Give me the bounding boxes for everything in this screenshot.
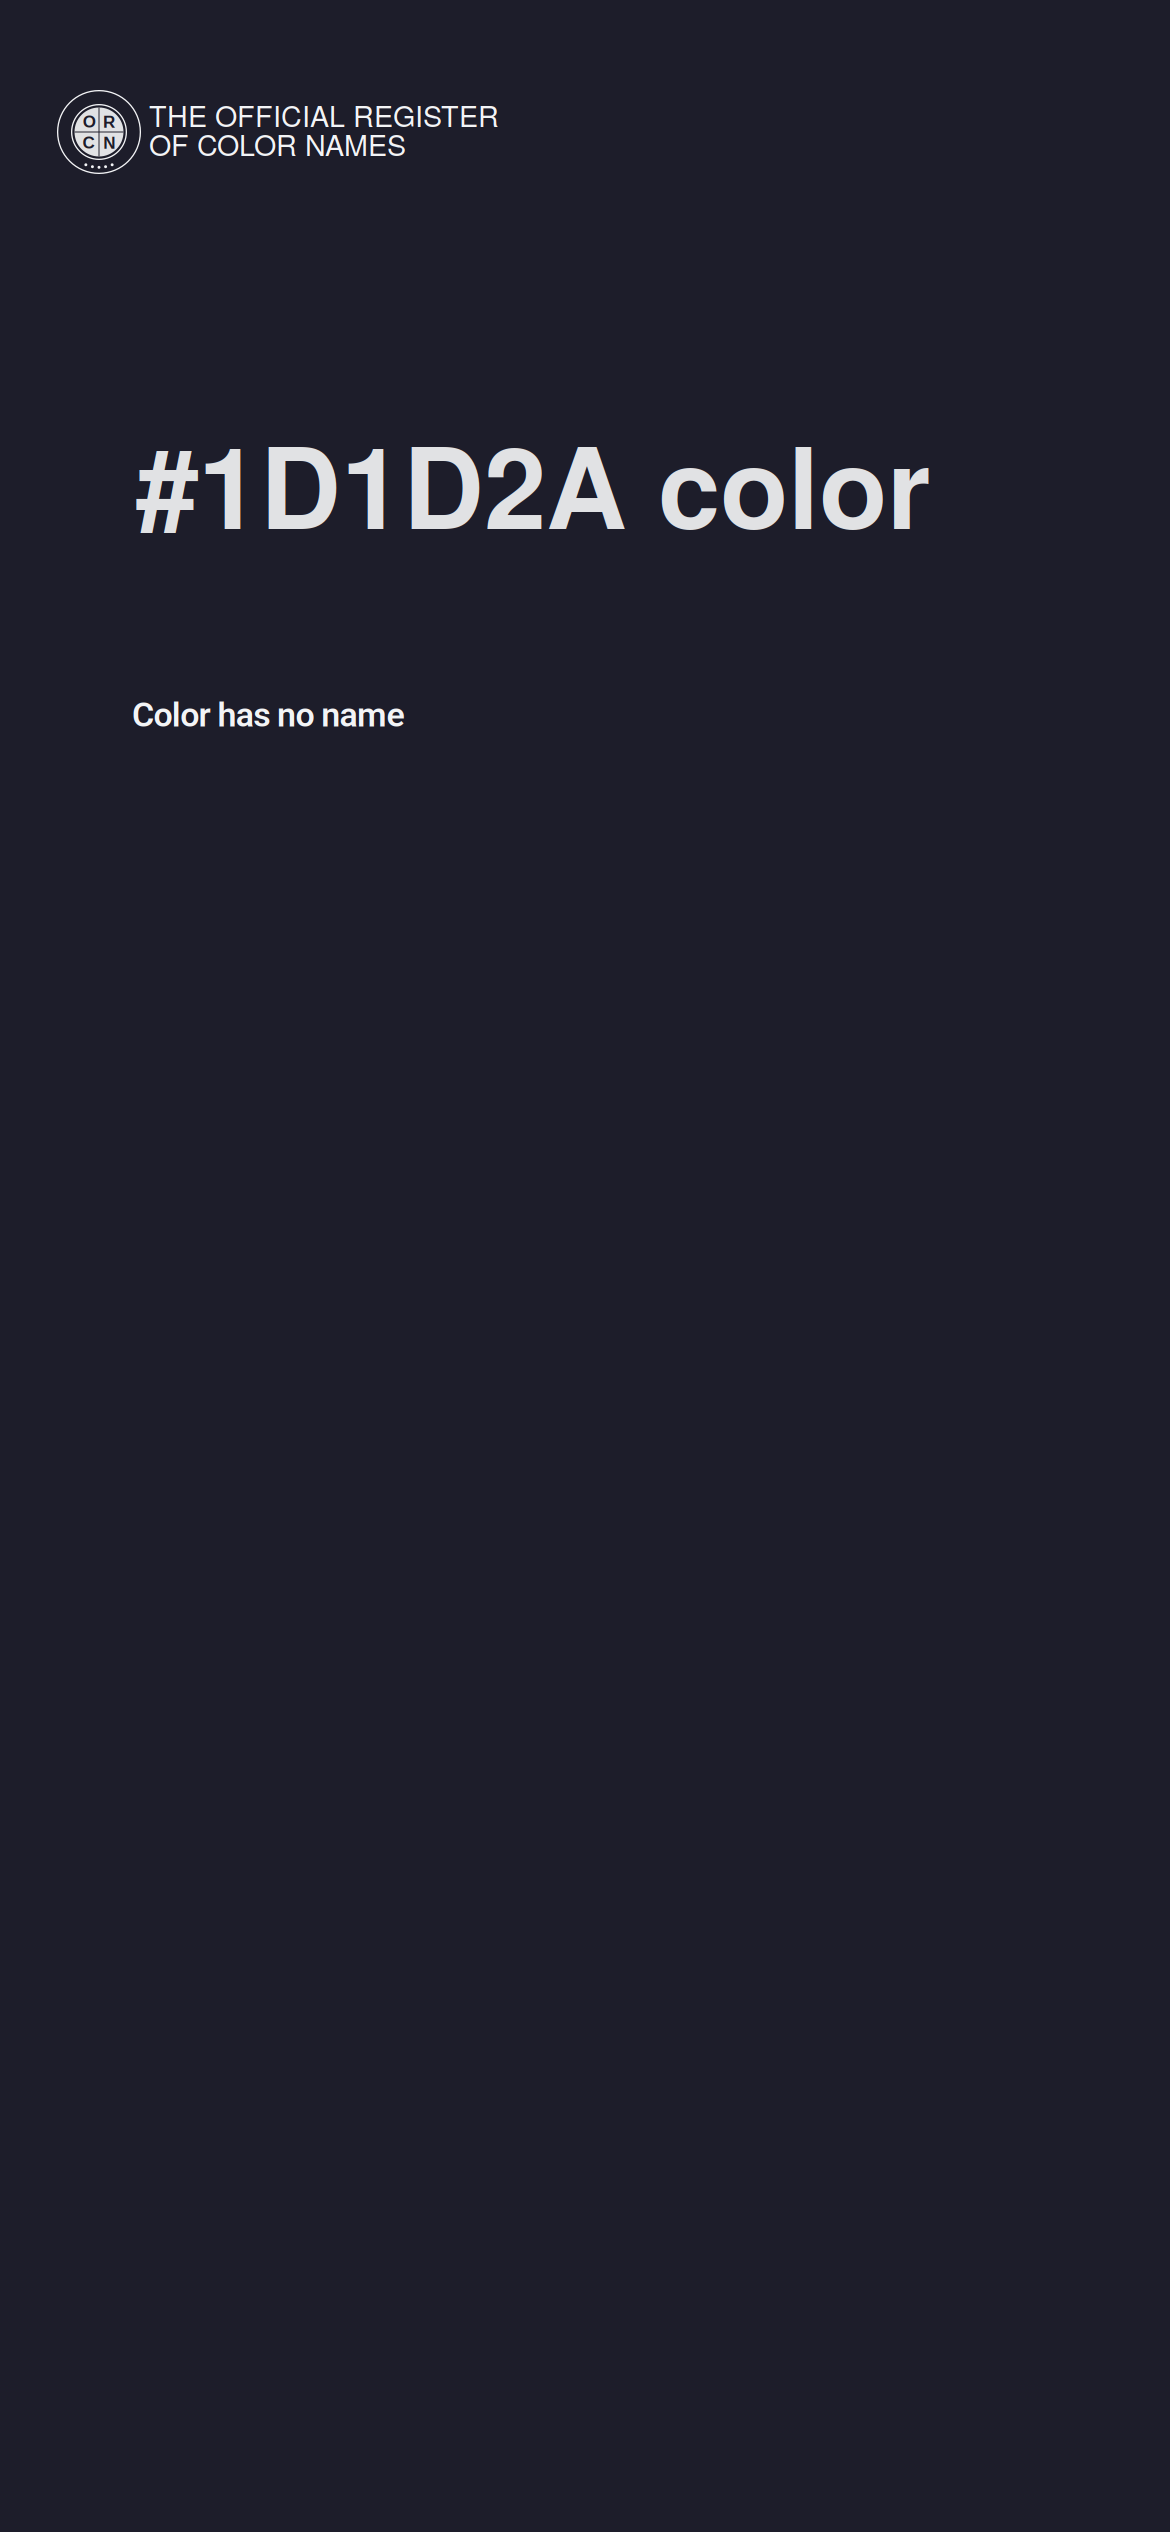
staticText: THE OFFICIAL REGISTER <box>149 94 499 135</box>
staticText: Color has no name <box>132 695 404 735</box>
staticText: R <box>103 112 115 131</box>
staticText: OF COLOR NAMES <box>149 123 406 164</box>
staticText: #1D1D2A color <box>136 403 931 563</box>
staticText: N <box>103 133 115 152</box>
button[interactable]: O <box>57 90 498 174</box>
staticText: O <box>83 112 96 131</box>
staticText: C <box>82 133 94 152</box>
